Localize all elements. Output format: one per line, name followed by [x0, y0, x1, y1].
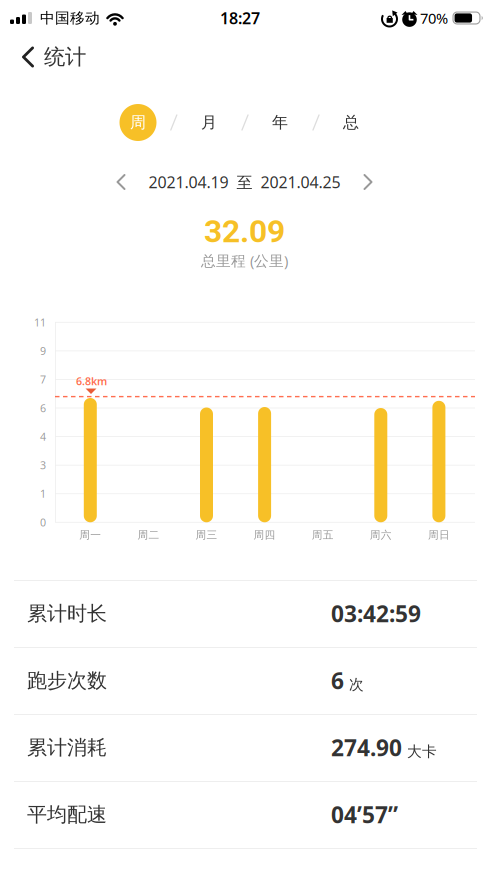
staticText: 周三	[195, 528, 217, 541]
staticText: 18:27	[220, 7, 260, 29]
staticText: 周日	[428, 528, 450, 541]
staticText: 跑步次数	[27, 668, 107, 693]
staticText: 总	[343, 113, 359, 132]
staticText: 周五	[312, 528, 334, 541]
staticText: 03:42:59	[331, 598, 421, 628]
staticText: 年	[272, 113, 288, 132]
staticText: 统计	[44, 44, 86, 70]
staticText: 周二	[137, 528, 159, 541]
staticText: 0	[40, 515, 46, 529]
staticText: 月	[201, 113, 217, 132]
staticText: 7	[40, 372, 46, 387]
staticText: 04’57”	[331, 799, 398, 829]
button[interactable]: 上一周	[116, 174, 125, 190]
button[interactable]: 返回	[22, 44, 86, 70]
staticText: 6	[331, 665, 344, 695]
staticText: 周六	[370, 528, 392, 541]
staticText: 4	[40, 429, 46, 444]
button[interactable]: 年	[244, 102, 315, 142]
staticText: 2021.04.19 至 2021.04.25	[148, 171, 340, 193]
staticText: 累计时长	[27, 601, 107, 626]
staticText: 总里程 (公里)	[201, 251, 288, 270]
button[interactable]: 下一周	[363, 174, 372, 190]
staticText: 1	[40, 487, 46, 501]
staticText: 70%	[420, 8, 448, 28]
staticText: 次	[349, 675, 364, 693]
staticText: 32.09	[204, 213, 285, 250]
button[interactable]: 月	[173, 102, 244, 142]
staticText: 大卡	[407, 742, 437, 760]
staticText: 3	[40, 458, 46, 472]
staticText: 平均配速	[27, 802, 107, 827]
button[interactable]: 总	[315, 102, 386, 142]
staticText: 6.8km	[76, 374, 107, 388]
button[interactable]: 周	[102, 102, 173, 142]
staticText: 6	[40, 401, 46, 415]
staticText: 周一	[79, 528, 101, 541]
staticText: 周	[130, 113, 146, 132]
staticText: 累计消耗	[27, 735, 107, 760]
staticText: 9	[40, 344, 46, 358]
staticText: 中国移动	[40, 9, 100, 27]
staticText: 周四	[254, 528, 276, 541]
staticText: 274.90	[331, 732, 402, 762]
staticText: 11	[34, 315, 46, 329]
